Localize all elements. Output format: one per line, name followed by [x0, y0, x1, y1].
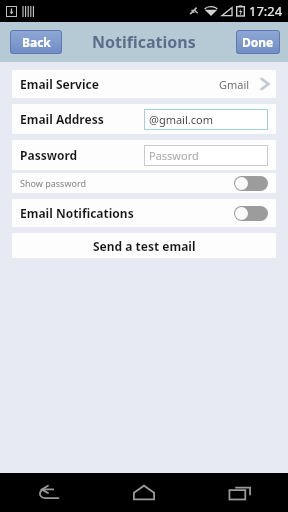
- other: Email Notifications: [234, 206, 268, 221]
- staticText: @gmail.com: [149, 112, 213, 127]
- button[interactable]: Show password: [12, 173, 276, 193]
- button[interactable]: Recents: [192, 473, 288, 512]
- staticText: Email Service: [20, 76, 99, 92]
- button[interactable]: Email Address: [12, 104, 276, 134]
- staticText: Email Address: [20, 111, 104, 127]
- button[interactable]: Email Service: [12, 70, 276, 98]
- staticText: Password: [20, 147, 78, 163]
- staticText: Done: [242, 34, 274, 50]
- staticText: Gmail: [219, 77, 250, 92]
- staticText: Email Notifications: [20, 205, 134, 221]
- button[interactable]: Done: [236, 30, 280, 54]
- other: Show password: [234, 176, 268, 191]
- staticText: 17:24: [249, 2, 283, 20]
- staticText: Notifications: [92, 31, 196, 53]
- button[interactable]: Back: [0, 473, 96, 512]
- button[interactable]: Back: [10, 30, 62, 54]
- staticText: Password: [149, 148, 199, 163]
- staticText: Show password: [20, 177, 86, 189]
- button[interactable]: Password: [12, 140, 276, 170]
- button[interactable]: Send a test email: [12, 233, 276, 258]
- button[interactable]: Email Notifications: [12, 199, 276, 227]
- button[interactable]: Home: [96, 473, 192, 512]
- staticText: Back: [22, 34, 51, 50]
- staticText: Send a test email: [93, 238, 196, 254]
